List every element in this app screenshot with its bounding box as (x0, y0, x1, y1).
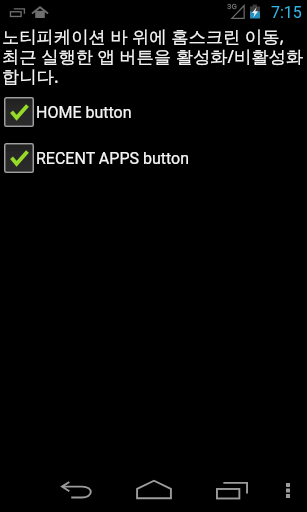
button[interactable]: Back (56, 476, 98, 504)
staticText: HOME button (36, 103, 132, 122)
staticText: 최근 실행한 앱 버튼을 활성화/비활성화 (2, 45, 304, 69)
button[interactable]: RECENT APPS button (0, 143, 307, 173)
staticText: 노티피케이션 바 위에 홈스크린 이동, (2, 25, 285, 49)
button[interactable]: HOME button (0, 97, 307, 127)
staticText: 7:15 (271, 3, 302, 22)
staticText: 3G (227, 2, 237, 11)
button[interactable]: Recent apps (211, 476, 252, 504)
staticText: 합니다. (2, 65, 59, 89)
button[interactable]: Menu (278, 476, 298, 504)
staticText: RECENT APPS button (36, 149, 190, 168)
button[interactable]: Home (131, 475, 176, 505)
